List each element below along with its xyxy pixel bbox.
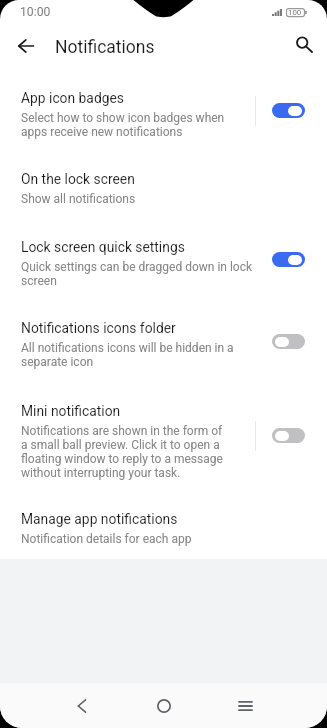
button[interactable]: Lock screen quick settings [0,235,327,316]
staticText: All notifications icons will be hidden i… [21,341,253,369]
button[interactable]: Back [4,28,48,64]
staticText: 100 [288,8,302,17]
staticText: Lock screen quick settings [21,239,185,255]
staticText: Notifications [55,37,155,58]
staticText: Notifications icons folder [21,320,176,336]
button[interactable]: App icon badges [0,86,327,167]
staticText: Mini notification [21,403,121,419]
button[interactable]: Home [122,683,206,728]
staticText: On the lock screen [21,171,135,187]
staticText: 10:00 [20,5,51,19]
staticText: Notification details for each app [21,532,192,546]
staticText: App icon badges [21,90,124,106]
button[interactable]: Mini notification [0,399,327,507]
staticText: Select how to show icon badges when apps… [21,111,226,139]
staticText: Manage app notifications [21,511,178,527]
button[interactable]: App icon badges [272,103,305,118]
button[interactable]: On the lock screen [0,167,327,235]
button[interactable]: Notifications icons folder [0,316,327,399]
button[interactable]: Recent apps [203,683,287,728]
staticText: Quick settings can be dragged down in lo… [21,260,253,288]
button[interactable]: Back [40,683,124,728]
button[interactable]: Search [283,28,323,64]
staticText: Show all notifications [21,192,136,206]
staticText: Notifications are shown in the form of a… [21,424,226,480]
button[interactable]: Lock screen quick settings [272,252,305,267]
button[interactable]: Mini notification [272,428,305,443]
button[interactable]: Manage app notifications [0,507,327,559]
button[interactable]: Notifications icons folder [272,334,305,349]
